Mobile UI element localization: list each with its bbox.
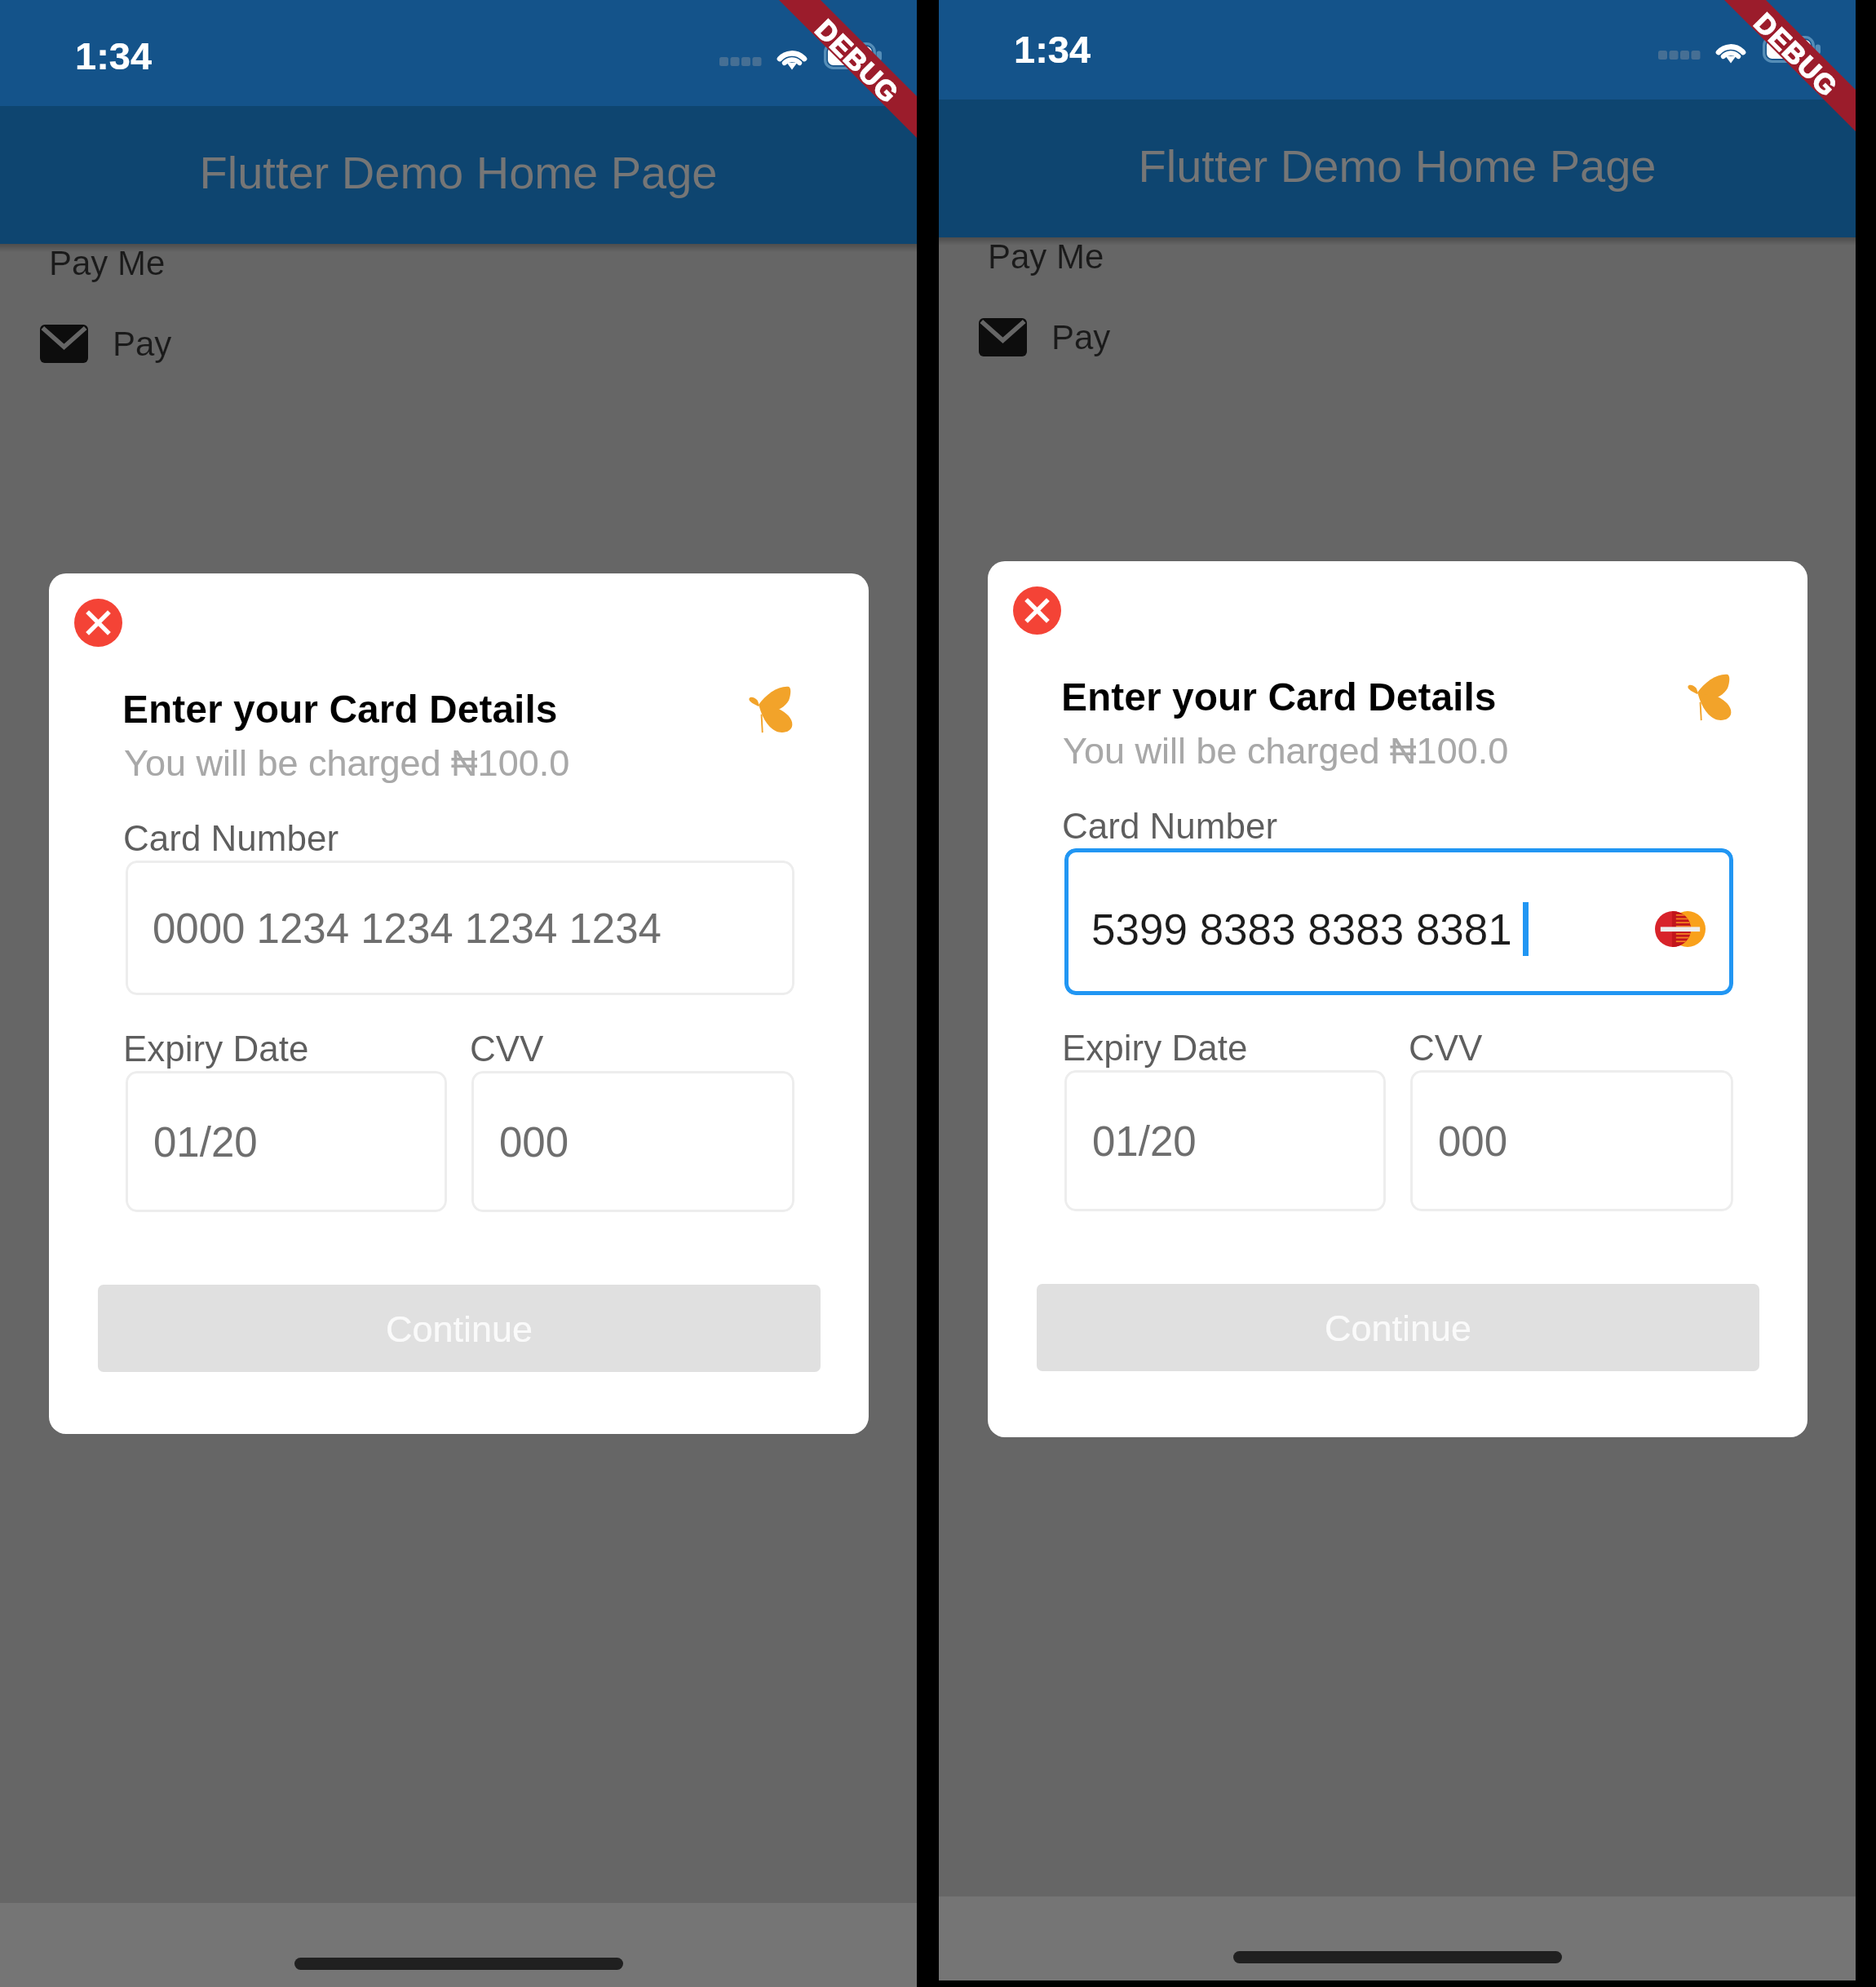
button[interactable]: 5399 8383 8383 8381 — [1064, 848, 1733, 995]
staticText: Expiry Date — [1062, 1028, 1248, 1068]
button[interactable]: 0000 1234 1234 1234 1234 — [126, 861, 794, 995]
button[interactable]: 01/20 — [1064, 1070, 1386, 1211]
staticText: 01/20 — [153, 1119, 258, 1166]
button[interactable]: Pay — [979, 310, 1111, 364]
button[interactable]: 000 — [471, 1071, 794, 1212]
staticText: 0000 1234 1234 1234 1234 — [153, 905, 661, 952]
staticText: 1:34 — [1014, 28, 1091, 71]
staticText: Expiry Date — [123, 1029, 309, 1069]
staticText: CVV — [1409, 1028, 1483, 1068]
staticText: Continue — [386, 1308, 533, 1349]
staticText: 5399 8383 8383 8381 — [1091, 905, 1512, 954]
button[interactable]: Continue — [98, 1285, 821, 1372]
staticText: 000 — [1438, 1118, 1508, 1165]
staticText: Enter your Card Details — [1061, 675, 1497, 719]
staticText: DEBUG — [1748, 7, 1844, 103]
button[interactable]: 01/20 — [126, 1071, 447, 1212]
staticText: Pay Me — [988, 237, 1104, 276]
button[interactable]: Close — [1013, 586, 1061, 635]
staticText: Card Number — [123, 818, 339, 858]
staticText: 01/20 — [1092, 1118, 1197, 1165]
staticText: Card Number — [1062, 806, 1278, 846]
staticText: 000 — [499, 1119, 569, 1166]
staticText: You will be charged ₦100.0 — [1063, 730, 1509, 771]
button[interactable]: Continue — [1037, 1284, 1759, 1371]
staticText: Flutter Demo Home Page — [0, 147, 917, 198]
staticText: Enter your Card Details — [122, 688, 558, 732]
staticText: DEBUG — [809, 13, 905, 109]
staticText: Pay — [1051, 318, 1111, 356]
staticText: Pay Me — [49, 244, 166, 282]
staticText: You will be charged ₦100.0 — [124, 742, 570, 783]
staticText: Flutter Demo Home Page — [939, 140, 1856, 192]
button[interactable]: Close — [74, 599, 122, 647]
staticText: Pay — [113, 325, 172, 363]
button[interactable]: Pay — [40, 316, 172, 370]
staticText: CVV — [470, 1029, 544, 1069]
staticText: 1:34 — [75, 34, 153, 77]
button[interactable]: 000 — [1410, 1070, 1733, 1211]
staticText: Continue — [1325, 1308, 1472, 1348]
